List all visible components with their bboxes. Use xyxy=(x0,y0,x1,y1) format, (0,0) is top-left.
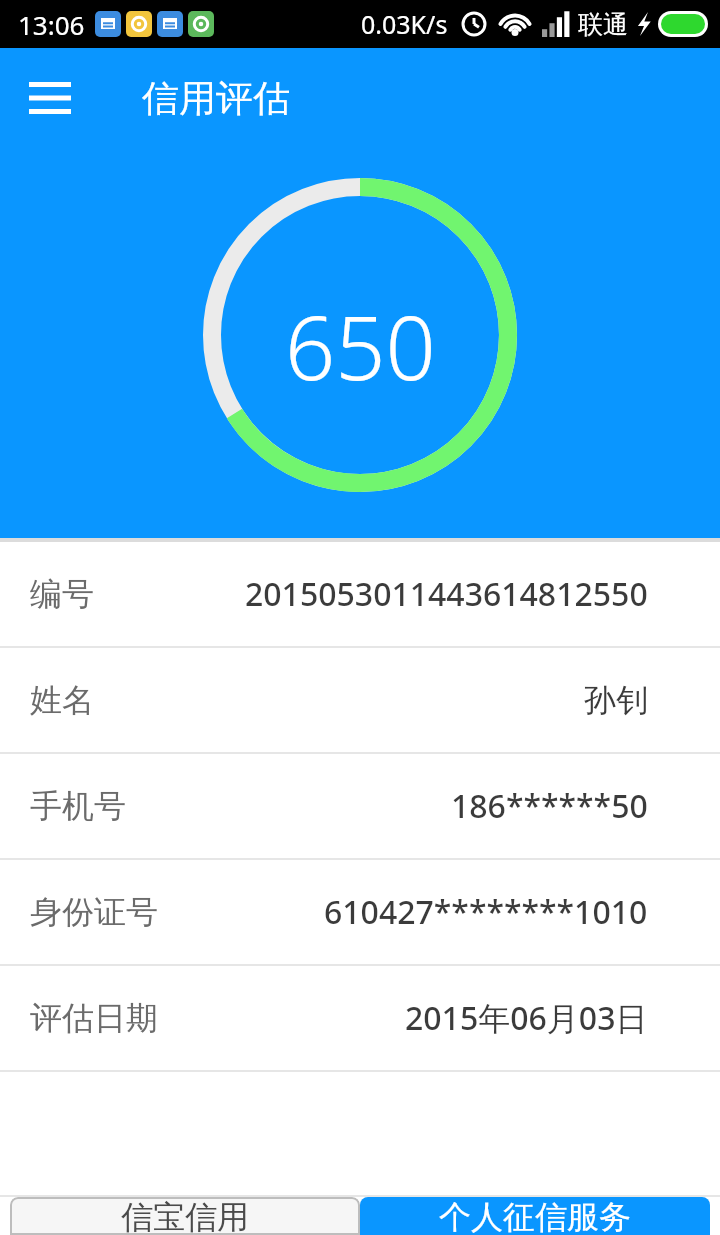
staticText: 个人征信服务 xyxy=(439,1197,631,1235)
staticText: 联通 xyxy=(578,9,628,40)
staticText: 610427********1010 xyxy=(324,890,648,934)
staticText: 0.03K/s xyxy=(361,7,448,41)
staticText: 姓名 xyxy=(30,680,94,720)
staticText: 评估日期 xyxy=(30,998,158,1038)
button[interactable]: 信宝信用 xyxy=(10,1197,360,1235)
staticText: 186******50 xyxy=(451,784,648,828)
button[interactable]: 评估日期 xyxy=(0,966,720,1072)
button[interactable]: 姓名 xyxy=(0,648,720,754)
button[interactable]: 身份证号 xyxy=(0,860,720,966)
button[interactable]: Menu xyxy=(14,62,86,134)
staticText: 650 xyxy=(285,286,436,406)
staticText: 编号 xyxy=(30,574,94,614)
staticText: 信用评估 xyxy=(142,75,290,122)
staticText: 孙钊 xyxy=(584,680,648,720)
staticText: 13:06 xyxy=(18,7,85,42)
button[interactable]: 编号 xyxy=(0,542,720,648)
staticText: 手机号 xyxy=(30,786,126,826)
button[interactable]: 个人征信服务 xyxy=(360,1197,710,1235)
staticText: 信宝信用 xyxy=(121,1197,249,1235)
staticText: 2015053011443614812550 xyxy=(245,572,648,616)
button[interactable]: 手机号 xyxy=(0,754,720,860)
staticText: 2015年06月03日 xyxy=(405,996,648,1040)
staticText: 身份证号 xyxy=(30,892,158,932)
